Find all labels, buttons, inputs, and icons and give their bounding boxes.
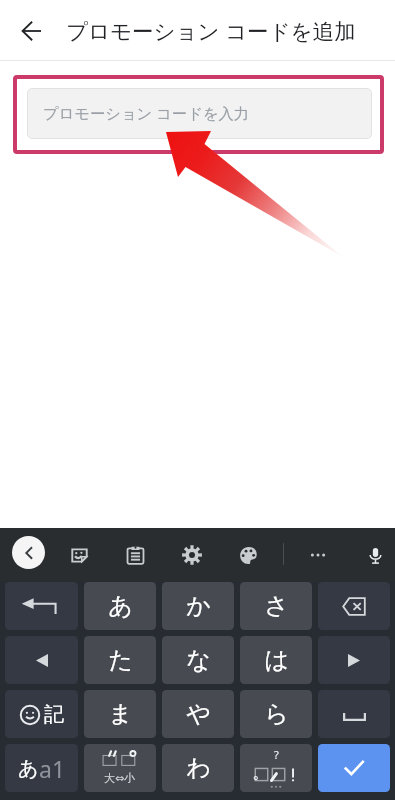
staticText: は — [264, 645, 289, 675]
button[interactable]: 確定 — [318, 744, 390, 792]
button[interactable]: More — [304, 541, 332, 569]
button[interactable]: Settings — [178, 541, 206, 569]
staticText: プロモーション コードを追加 — [66, 16, 356, 45]
button[interactable]: Clipboard — [121, 541, 149, 569]
staticText: な — [186, 645, 211, 675]
staticText: 大⇔小 — [104, 771, 136, 785]
button[interactable]: は — [240, 636, 312, 684]
staticText: か — [186, 591, 211, 621]
staticText: あ — [18, 756, 39, 781]
button[interactable]: た — [84, 636, 156, 684]
staticText: や — [186, 699, 211, 729]
button[interactable]: 左 — [5, 636, 78, 684]
button[interactable]: Back — [12, 536, 45, 569]
button[interactable]: か — [162, 582, 234, 630]
staticText: た — [108, 645, 133, 675]
button[interactable]: 削除 — [318, 582, 390, 630]
staticText: ま — [108, 699, 133, 729]
staticText: わ — [186, 753, 211, 783]
staticText: あ — [108, 591, 133, 621]
button[interactable]: 改行 — [5, 582, 78, 630]
staticText: 記 — [44, 702, 64, 727]
button[interactable]: 濁点 — [84, 744, 156, 792]
button[interactable]: わ — [162, 744, 234, 792]
button[interactable]: 記号 — [240, 744, 312, 792]
staticText: ? — [274, 747, 279, 762]
button[interactable]: ら — [240, 690, 312, 738]
button[interactable]: プロモーション コードを入力 — [27, 88, 372, 139]
staticText: さ — [264, 591, 289, 621]
button[interactable]: な — [162, 636, 234, 684]
button[interactable]: 絵文字 — [5, 690, 78, 738]
button[interactable]: 右 — [318, 636, 390, 684]
staticText: ら — [264, 699, 289, 729]
button[interactable]: 戻る — [7, 7, 55, 55]
button[interactable]: ま — [84, 690, 156, 738]
button[interactable]: Voice input — [361, 541, 389, 569]
button[interactable]: あ — [5, 744, 78, 792]
button[interactable]: Theme — [234, 541, 262, 569]
staticText: プロモーション コードを入力 — [43, 103, 250, 124]
staticText: a1 — [39, 753, 66, 784]
button[interactable]: や — [162, 690, 234, 738]
button[interactable]: Stickers — [65, 541, 93, 569]
button[interactable]: スペース — [318, 690, 390, 738]
button[interactable]: あ — [84, 582, 156, 630]
button[interactable]: さ — [240, 582, 312, 630]
